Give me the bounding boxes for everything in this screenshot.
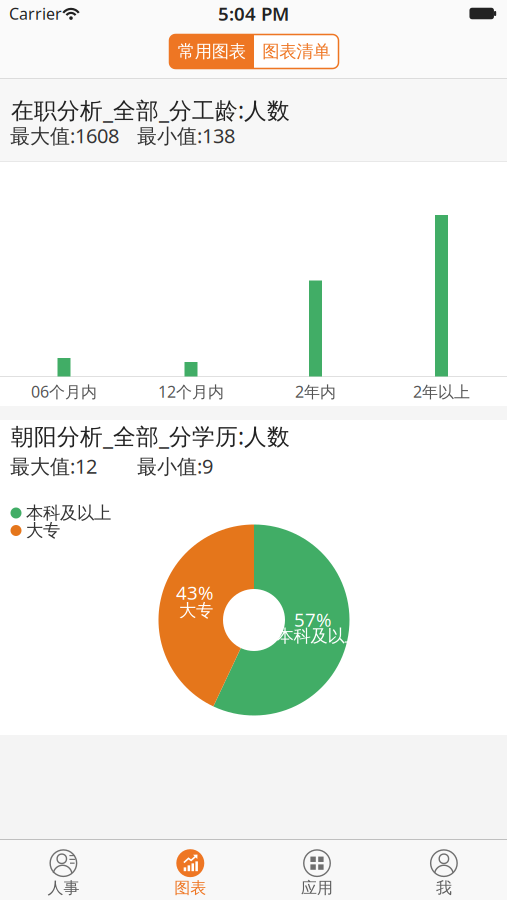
staticText: 最小值:138 (137, 122, 235, 149)
staticText: 图表 (174, 878, 206, 898)
staticText: 57% (294, 607, 332, 632)
staticText: 43% (176, 580, 214, 605)
button[interactable]: 我 (381, 842, 507, 900)
staticText: 图表清单 (262, 41, 330, 62)
staticText: 应用 (301, 878, 333, 898)
button[interactable]: 人事 (0, 842, 126, 900)
button[interactable]: 图表清单 (254, 34, 338, 68)
staticText: 大专 (26, 520, 60, 541)
staticText: 朝阳分析_全部_分学历:人数 (11, 421, 290, 451)
staticText: 最大值:12 (10, 453, 97, 479)
staticText: 常用图表 (178, 41, 246, 62)
staticText: 在职分析_全部_分工龄:人数 (11, 95, 290, 125)
staticText: 12个月内 (158, 381, 224, 402)
staticText: 5:04 PM (218, 1, 289, 26)
staticText: 我 (436, 878, 452, 898)
button[interactable]: 图表 (127, 842, 253, 900)
staticText: 大专 (179, 600, 213, 621)
staticText: 本科及以上 (276, 625, 361, 647)
staticText: Carrier (9, 3, 62, 24)
staticText: 06个月内 (31, 381, 97, 402)
staticText: 人事 (47, 878, 79, 898)
staticText: 2年内 (295, 381, 336, 402)
button[interactable]: 常用图表 (169, 34, 254, 68)
staticText: 本科及以上 (26, 502, 111, 524)
staticText: 2年以上 (413, 381, 470, 402)
staticText: 最小值:9 (137, 453, 213, 479)
staticText: 最大值:1608 (10, 122, 119, 149)
button[interactable]: 应用 (254, 842, 380, 900)
